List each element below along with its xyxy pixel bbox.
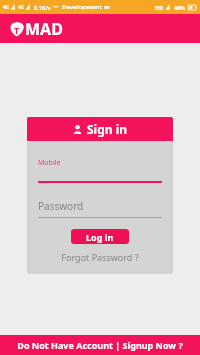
staticText: HD xyxy=(155,4,164,11)
button[interactable]: Log in xyxy=(71,229,129,244)
staticText: Sign in xyxy=(87,121,128,137)
staticText: MAD xyxy=(25,18,63,40)
button[interactable]: Do Not Have Account | Signup Now ? xyxy=(0,335,200,355)
staticText: ••• xyxy=(53,4,59,11)
staticText: 4G xyxy=(3,4,10,11)
staticText: 4G xyxy=(18,4,25,11)
staticText: 46% xyxy=(174,4,186,11)
button[interactable]: Sign in xyxy=(27,117,173,141)
staticText: T xyxy=(14,24,20,36)
staticText: Forgot Password ? xyxy=(61,251,139,263)
staticText: Log in xyxy=(86,231,114,243)
staticText: Mobile xyxy=(38,158,61,168)
button[interactable]: Forgot Password ? xyxy=(38,251,162,263)
staticText: Development m xyxy=(62,3,110,11)
staticText: Do Not Have Account | Signup Now ? xyxy=(17,339,183,351)
staticText: 0.1K/s xyxy=(34,4,51,11)
staticText: Password xyxy=(38,199,84,213)
